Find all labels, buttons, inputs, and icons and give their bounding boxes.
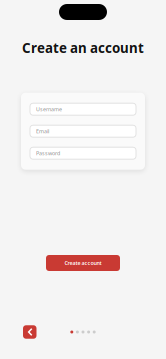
staticText: Create account [64,259,101,267]
staticText: Password [36,150,60,157]
button[interactable]: Back [23,325,36,339]
staticText: Create an account [22,39,144,57]
staticText: Username [36,106,62,113]
button[interactable]: Create account [46,255,120,271]
staticText: Email [36,128,49,135]
